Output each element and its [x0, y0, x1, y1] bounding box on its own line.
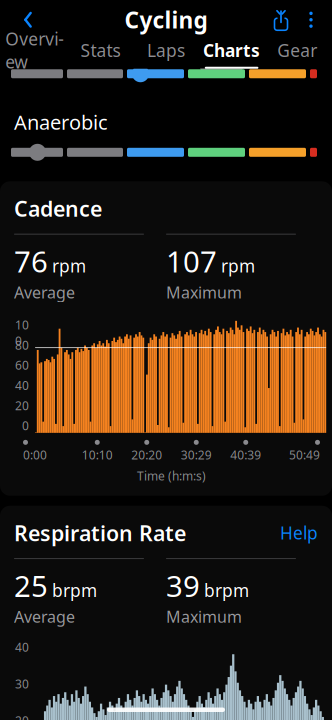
staticText: 50:49 — [289, 447, 320, 463]
button[interactable]: Help — [280, 521, 318, 544]
staticText: 20 — [15, 397, 29, 413]
staticText: 107 — [166, 242, 217, 281]
button[interactable]: Charts — [199, 39, 264, 69]
staticText: Anaerobic — [14, 109, 108, 135]
staticText: Stats — [80, 39, 120, 62]
staticText: 39 — [166, 566, 200, 605]
staticText: 20:20 — [131, 447, 162, 463]
staticText: Maximum — [166, 606, 242, 627]
staticText: Maximum — [166, 282, 242, 303]
button[interactable]: More options — [298, 1, 324, 39]
staticText: 76 — [14, 242, 48, 281]
staticText: 20 — [15, 713, 29, 720]
button[interactable]: Stats — [68, 39, 133, 69]
button[interactable]: Back — [8, 1, 48, 39]
staticText: Charts — [203, 39, 260, 62]
staticText: 10:10 — [82, 447, 113, 463]
staticText: Help — [280, 521, 318, 544]
staticText: 25 — [14, 566, 48, 605]
button[interactable]: Laps — [133, 39, 199, 69]
button[interactable]: Gear — [264, 39, 330, 69]
staticText: brpm — [52, 579, 97, 602]
staticText: Average — [14, 606, 75, 627]
staticText: 80 — [15, 337, 29, 353]
staticText: Laps — [147, 39, 185, 62]
staticText: Cycling — [124, 5, 207, 35]
staticText: Overview — [5, 27, 64, 73]
staticText: 30 — [15, 676, 29, 692]
staticText: rpm — [52, 254, 86, 277]
staticText: Respiration Rate — [14, 519, 186, 547]
staticText: Time (h:m:s) — [137, 468, 206, 484]
staticText: 40 — [15, 639, 29, 655]
staticText: 30:29 — [181, 447, 212, 463]
staticText: Gear — [277, 39, 317, 62]
staticText: Average — [14, 282, 75, 303]
button[interactable]: Share — [264, 1, 298, 39]
staticText: Cadence — [14, 194, 102, 223]
button[interactable]: Overview — [2, 39, 68, 69]
staticText: brpm — [204, 579, 249, 602]
staticText: 0:00 — [23, 447, 47, 463]
staticText: 100 — [15, 317, 29, 337]
staticText: 40:39 — [230, 447, 261, 463]
staticText: 0 — [22, 418, 29, 434]
staticText: 60 — [15, 357, 29, 373]
staticText: rpm — [221, 254, 255, 277]
staticText: 40 — [15, 377, 29, 393]
